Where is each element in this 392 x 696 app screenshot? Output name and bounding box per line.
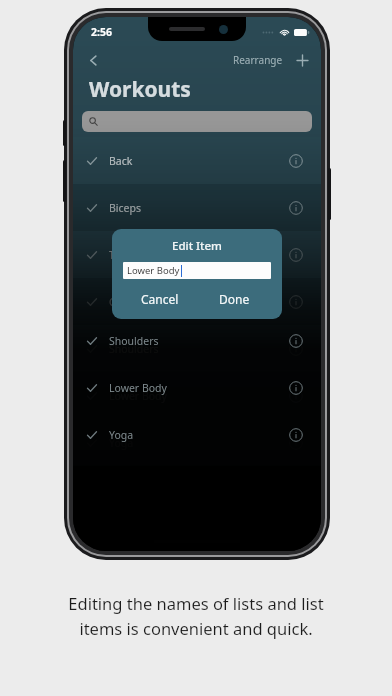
button[interactable]: Shoulders bbox=[73, 325, 321, 372]
staticText: Chest bbox=[109, 295, 137, 309]
staticText: 2:56 bbox=[91, 25, 112, 39]
button[interactable]: Info bbox=[285, 338, 307, 360]
button[interactable]: Info bbox=[285, 385, 307, 407]
button[interactable]: Info bbox=[285, 330, 307, 352]
button[interactable]: Shoulders bbox=[73, 317, 321, 364]
button[interactable]: Lower Body bbox=[73, 364, 321, 411]
staticText: Shoulders bbox=[109, 342, 159, 356]
button[interactable]: Add bbox=[289, 47, 315, 73]
staticText: Yoga bbox=[109, 436, 134, 450]
button[interactable]: Info bbox=[285, 244, 307, 266]
button[interactable]: Info bbox=[285, 377, 307, 399]
staticText: Back bbox=[109, 154, 133, 168]
staticText: Lower Body bbox=[127, 264, 180, 277]
staticText: Edit Item bbox=[172, 238, 223, 254]
button[interactable]: Back bbox=[79, 47, 107, 73]
button[interactable]: Yoga bbox=[73, 419, 321, 466]
button[interactable]: Done bbox=[197, 288, 271, 310]
staticText: Lower Body bbox=[109, 389, 167, 403]
button[interactable]: Info bbox=[285, 432, 307, 454]
button[interactable]: Info bbox=[285, 197, 307, 219]
staticText: items is convenient and quick. bbox=[79, 617, 313, 639]
button[interactable]: Info bbox=[285, 150, 307, 172]
button[interactable]: Lower Body bbox=[73, 372, 321, 419]
staticText: Biceps bbox=[109, 201, 141, 215]
staticText: Yoga bbox=[109, 428, 134, 442]
button[interactable]: Back bbox=[73, 137, 321, 184]
button[interactable]: Biceps bbox=[73, 184, 321, 231]
button[interactable]: Triceps bbox=[73, 231, 321, 278]
staticText: Triceps bbox=[109, 248, 144, 262]
button[interactable]: Rearrange bbox=[227, 49, 289, 71]
button[interactable]: Lower Body bbox=[123, 262, 271, 279]
staticText: Workouts bbox=[89, 75, 191, 104]
button[interactable]: Info bbox=[285, 291, 307, 313]
staticText: Cancel bbox=[141, 291, 179, 307]
staticText: Lower Body bbox=[109, 381, 167, 395]
staticText: Rearrange bbox=[233, 53, 283, 67]
staticText: Done bbox=[219, 291, 250, 307]
button[interactable]: Chest bbox=[73, 278, 321, 325]
button[interactable]: Info bbox=[285, 424, 307, 446]
button[interactable]: Cancel bbox=[123, 288, 197, 310]
button[interactable] bbox=[82, 111, 312, 132]
staticText: Shoulders bbox=[109, 334, 159, 348]
button[interactable]: Yoga bbox=[73, 411, 321, 458]
staticText: Editing the names of lists and list bbox=[68, 592, 324, 614]
